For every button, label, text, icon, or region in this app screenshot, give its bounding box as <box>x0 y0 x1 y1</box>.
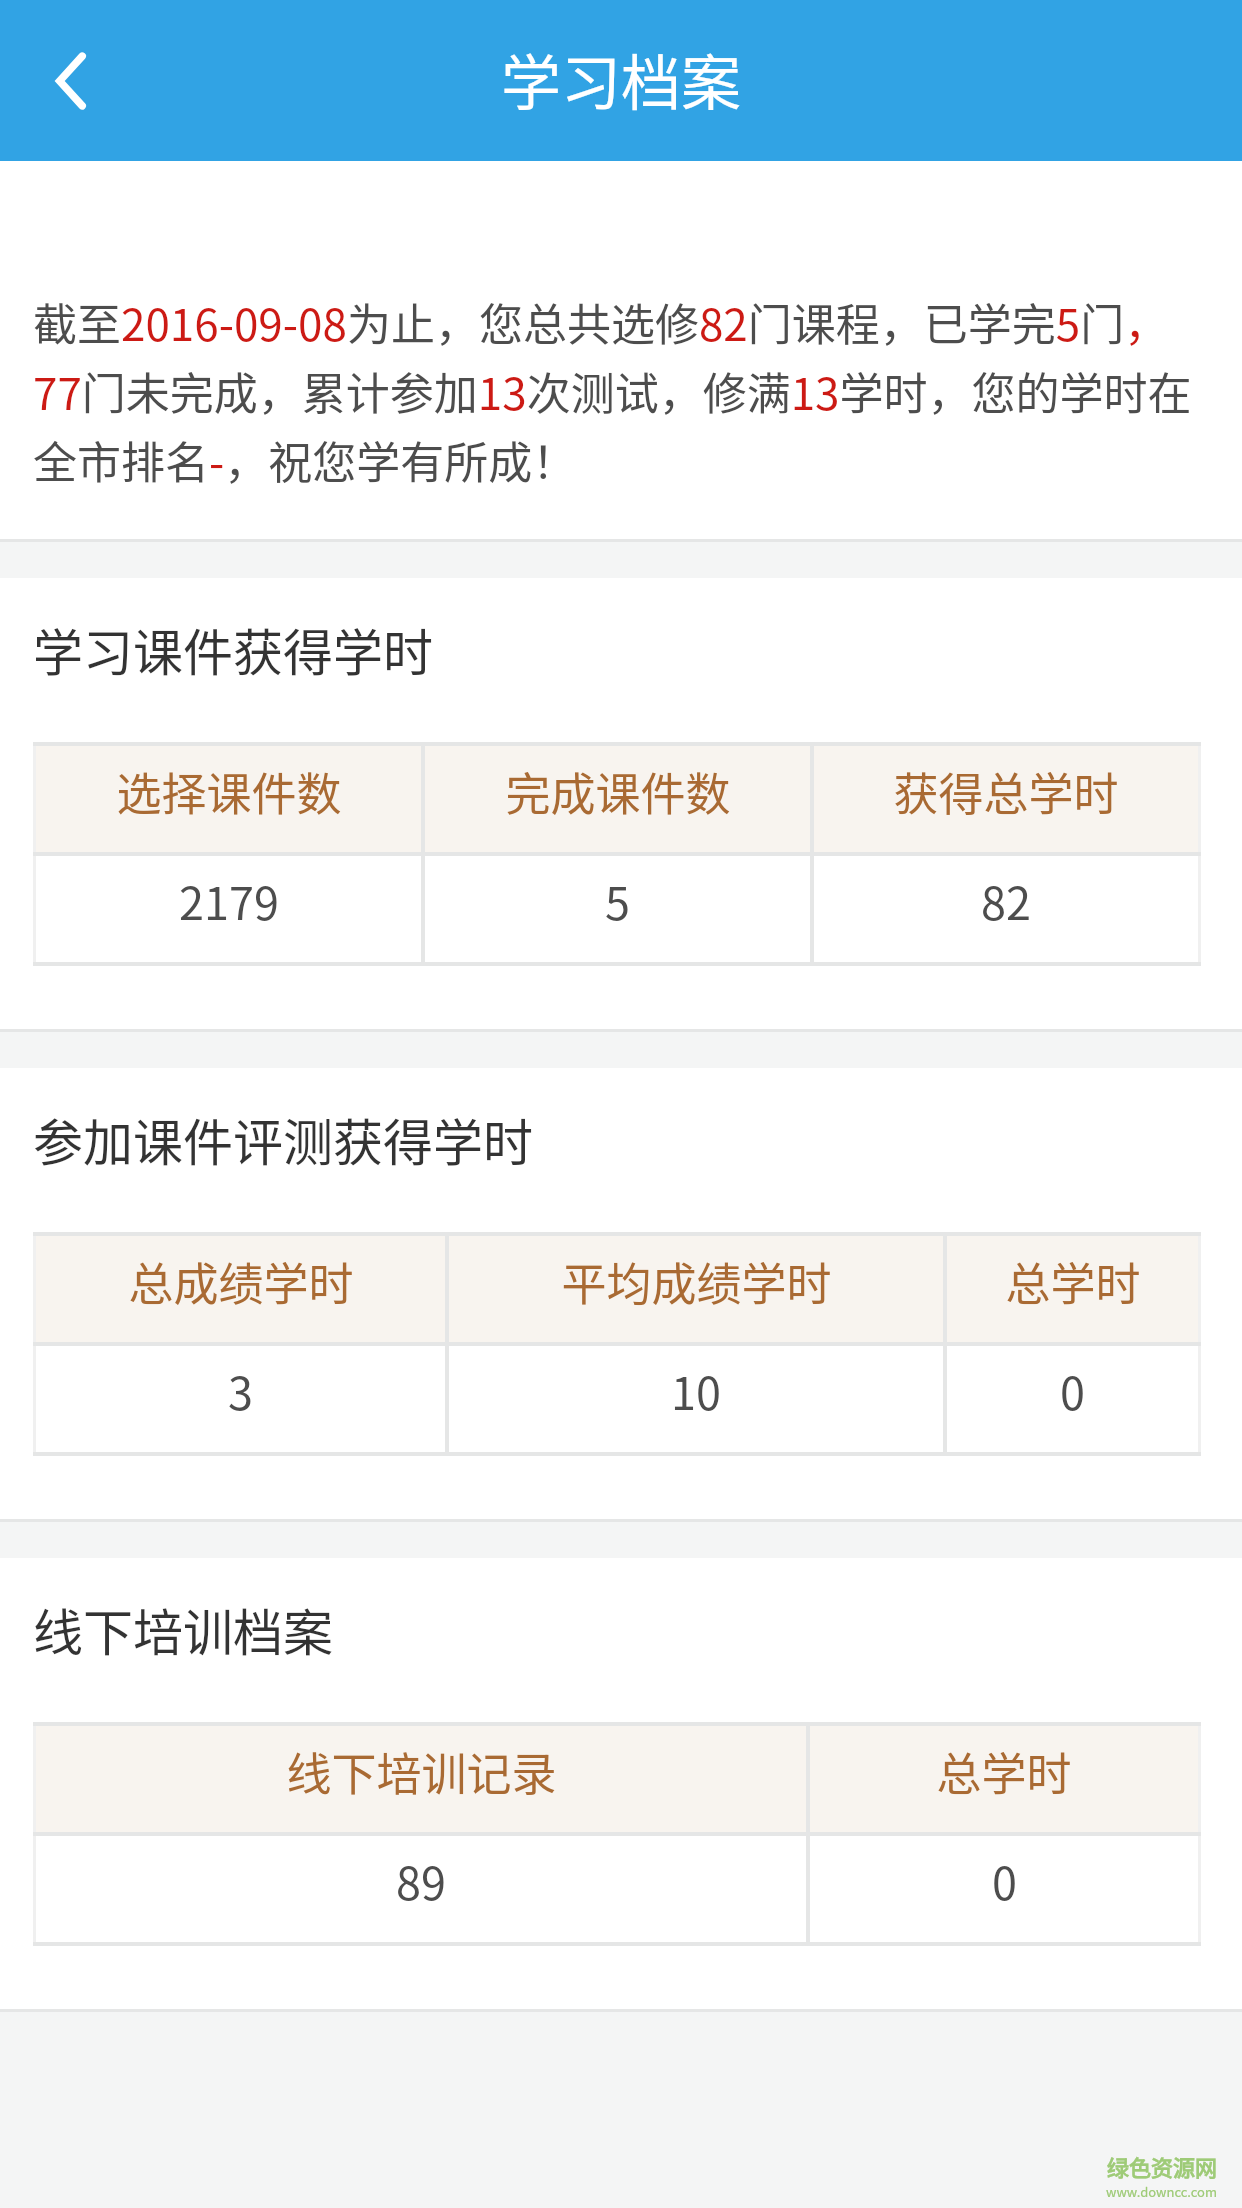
staticText: 总成绩学时 <box>128 1249 354 1314</box>
staticText: 线下培训记录 <box>286 1739 557 1804</box>
staticText: 89 <box>396 1848 446 1913</box>
staticText: 总学时 <box>1005 1249 1141 1314</box>
staticText: 2179 <box>179 868 279 933</box>
staticText: 线下培训档案 <box>33 1593 333 1665</box>
staticText: 0 <box>992 1848 1017 1913</box>
staticText: 完成课件数 <box>505 759 731 824</box>
staticText: 0 <box>1060 1358 1085 1423</box>
staticText: 学习课件获得学时 <box>33 613 433 685</box>
staticText: 获得总学时 <box>893 759 1119 824</box>
staticText: 学习档案 <box>501 35 741 122</box>
staticText: 82 <box>981 868 1031 933</box>
staticText: 10 <box>671 1358 721 1423</box>
staticText: 参加课件评测获得学时 <box>33 1103 533 1175</box>
staticText: 截至2016-09-08为止，您总共选修82门课程，已学完5门，77门未完成，累… <box>33 290 1197 492</box>
staticText: 总学时 <box>936 1739 1072 1804</box>
staticText: 5 <box>605 868 630 933</box>
button[interactable]: Back <box>0 0 140 161</box>
staticText: 3 <box>228 1358 253 1423</box>
staticText: 选择课件数 <box>116 759 342 824</box>
staticText: 绿色资源网 <box>1107 2150 1218 2182</box>
staticText: www.downcc.com <box>1106 2182 1218 2201</box>
staticText: 平均成绩学时 <box>561 1249 832 1314</box>
